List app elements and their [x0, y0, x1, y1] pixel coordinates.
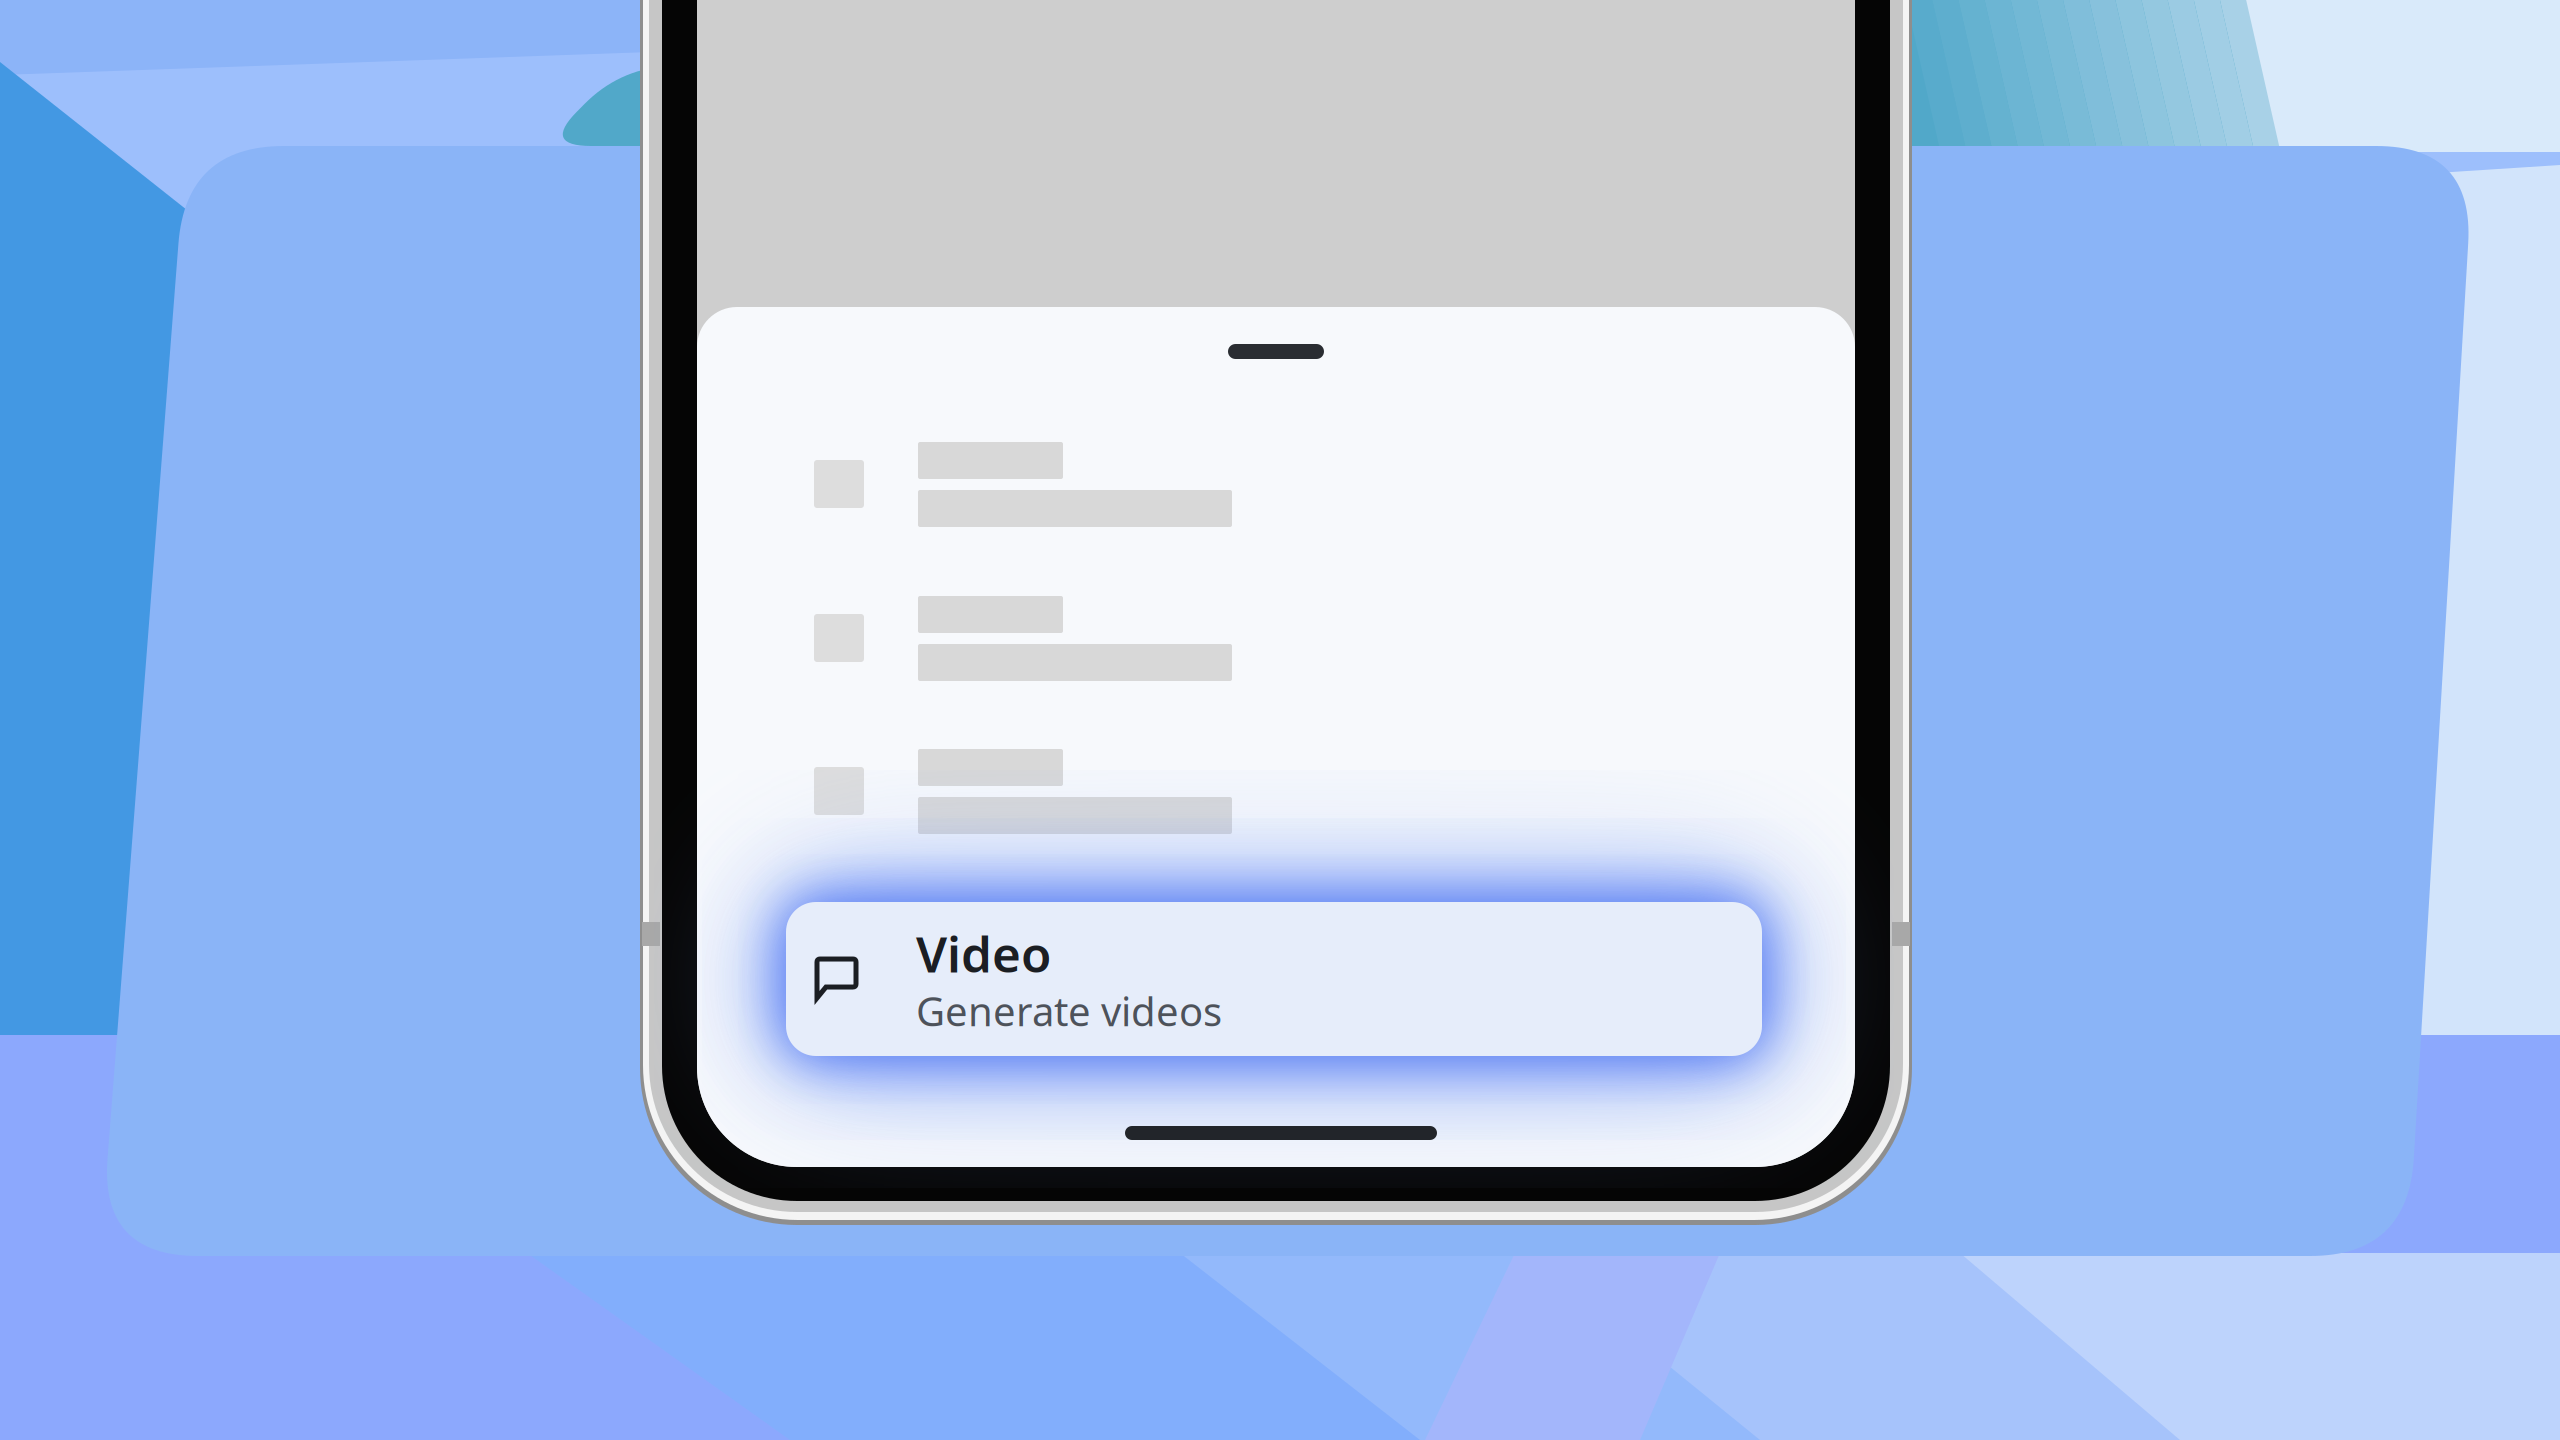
staticText: Video: [916, 921, 1051, 986]
button[interactable]: Video: [786, 902, 1762, 1056]
staticText: Generate videos: [916, 984, 1222, 1037]
